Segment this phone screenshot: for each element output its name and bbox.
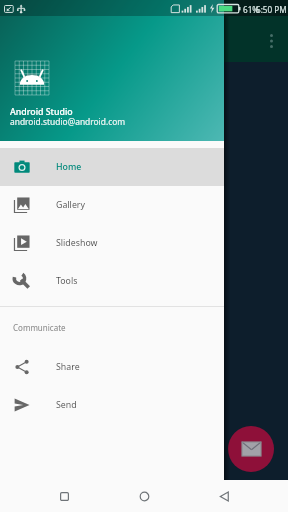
button[interactable]: Tools [0, 262, 224, 300]
button[interactable]: More options [261, 30, 282, 51]
staticText: Slideshow [56, 237, 98, 249]
button[interactable]: Home [0, 148, 224, 186]
staticText: 6:50 PM [256, 4, 287, 15]
staticText: Android Studio [10, 106, 73, 118]
button[interactable]: Gallery [0, 186, 224, 224]
staticText: Communicate [13, 322, 66, 333]
button[interactable]: Compose email [228, 426, 274, 472]
staticText: Send [56, 399, 77, 411]
staticText: Share [56, 361, 80, 373]
staticText: Gallery [56, 199, 85, 211]
button[interactable]: Share [0, 348, 224, 386]
staticText: 61% [243, 4, 260, 15]
button[interactable]: Back [205, 480, 243, 512]
button[interactable]: Recent apps [45, 480, 83, 512]
button[interactable]: Send [0, 386, 224, 424]
staticText: Tools [56, 275, 78, 287]
button[interactable]: Home [125, 480, 163, 512]
staticText: Home [56, 161, 82, 173]
staticText: android.studio@android.com [10, 116, 126, 127]
button[interactable]: Slideshow [0, 224, 224, 262]
